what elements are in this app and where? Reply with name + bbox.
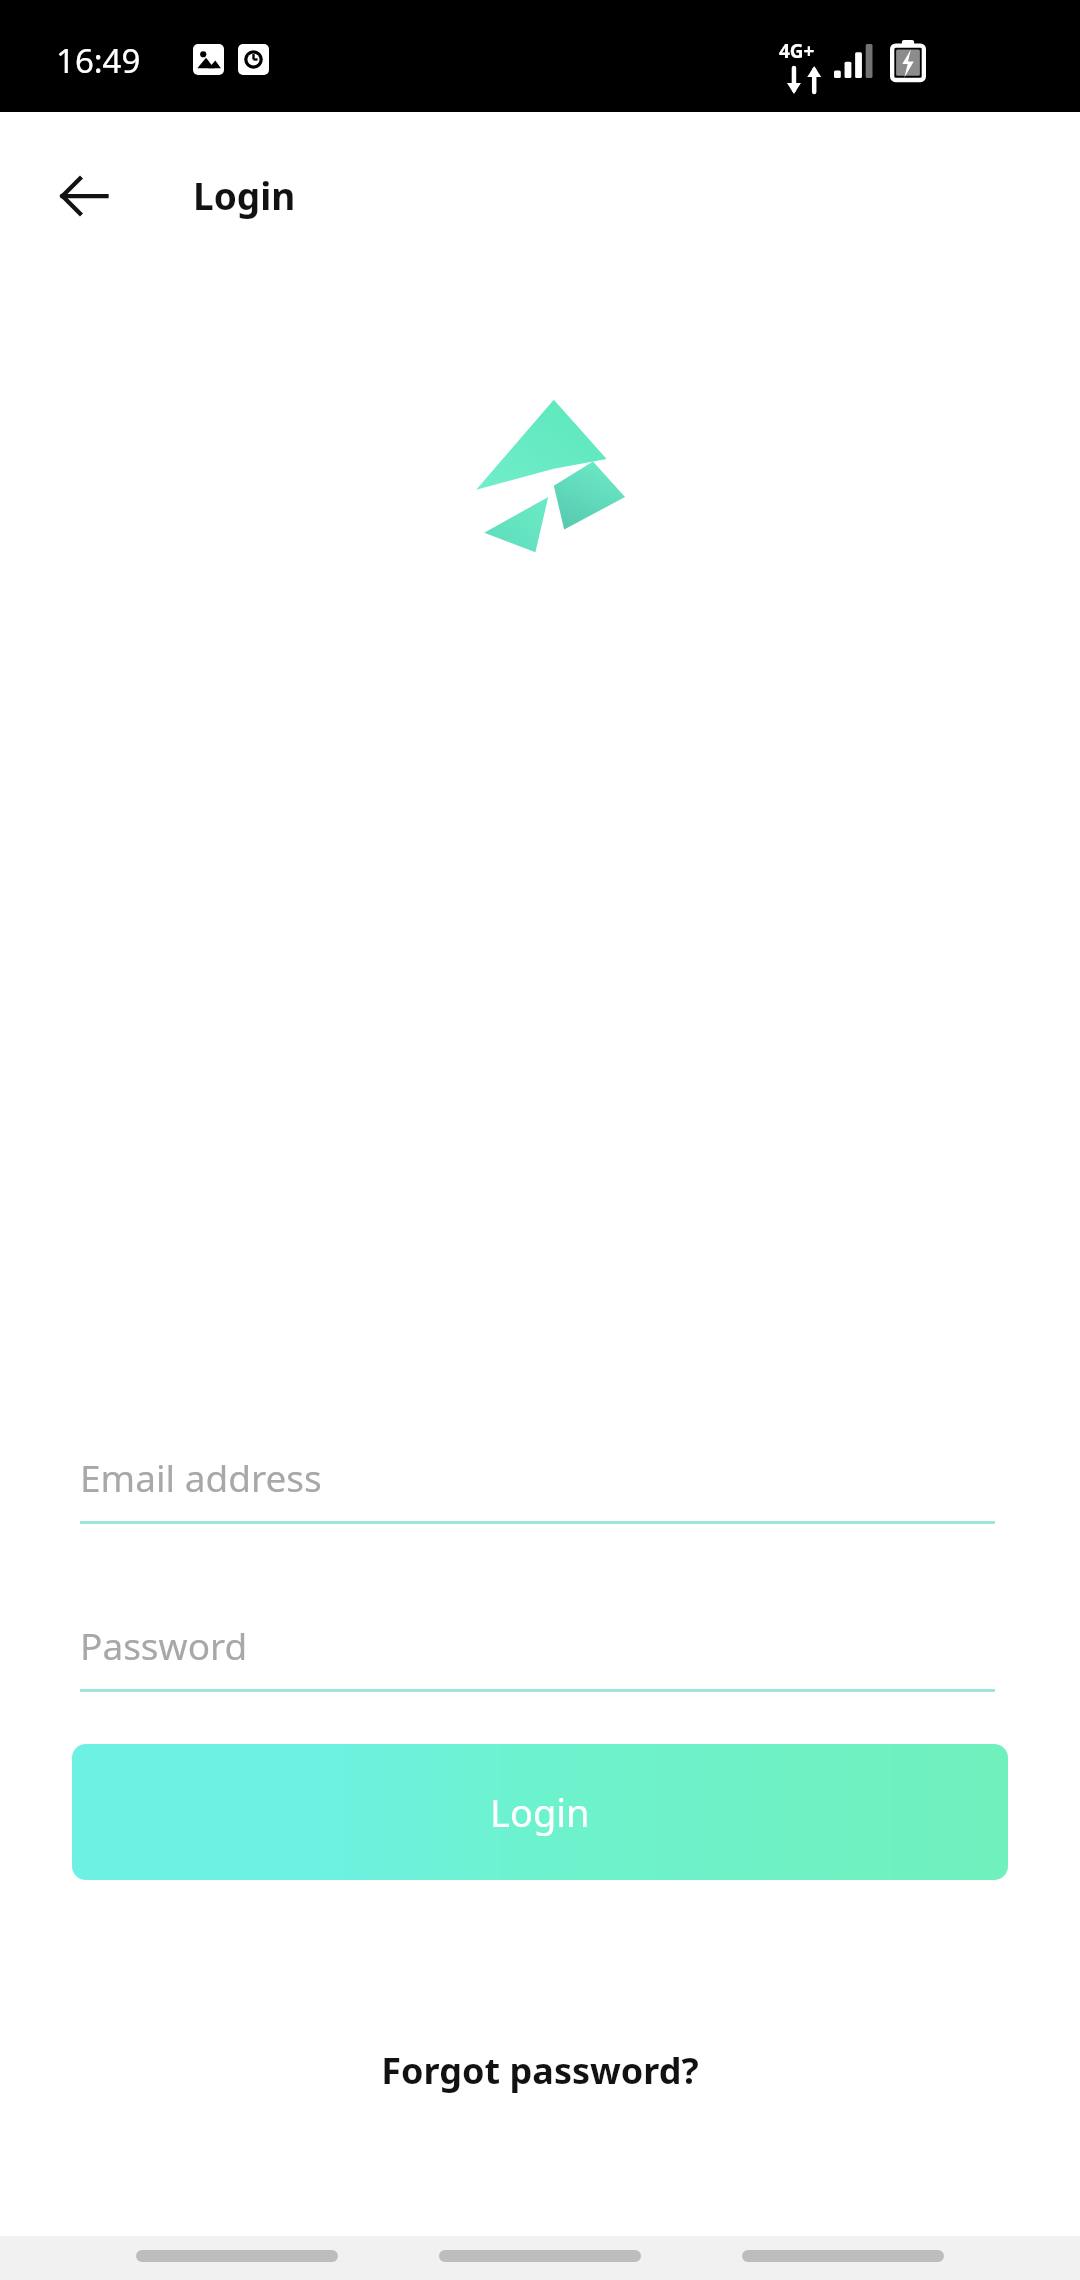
staticText: Password — [80, 1620, 248, 1670]
button[interactable]: Email address — [80, 1418, 995, 1524]
staticText: Login — [490, 1786, 590, 1838]
button[interactable]: Back — [40, 152, 128, 240]
button[interactable]: Password — [80, 1586, 995, 1692]
staticText: Email address — [80, 1452, 322, 1502]
staticText: Login — [193, 170, 296, 220]
button[interactable]: Login — [72, 1744, 1008, 1880]
button[interactable]: Navigation — [136, 2250, 338, 2262]
button[interactable]: Forgot password? — [0, 2025, 1080, 2115]
button[interactable]: Navigation — [742, 2250, 944, 2262]
staticText: 4G+ — [779, 38, 815, 64]
staticText: Forgot password? — [381, 2046, 699, 2095]
button[interactable]: Navigation — [439, 2250, 641, 2262]
staticText: 16:49 — [56, 38, 141, 83]
